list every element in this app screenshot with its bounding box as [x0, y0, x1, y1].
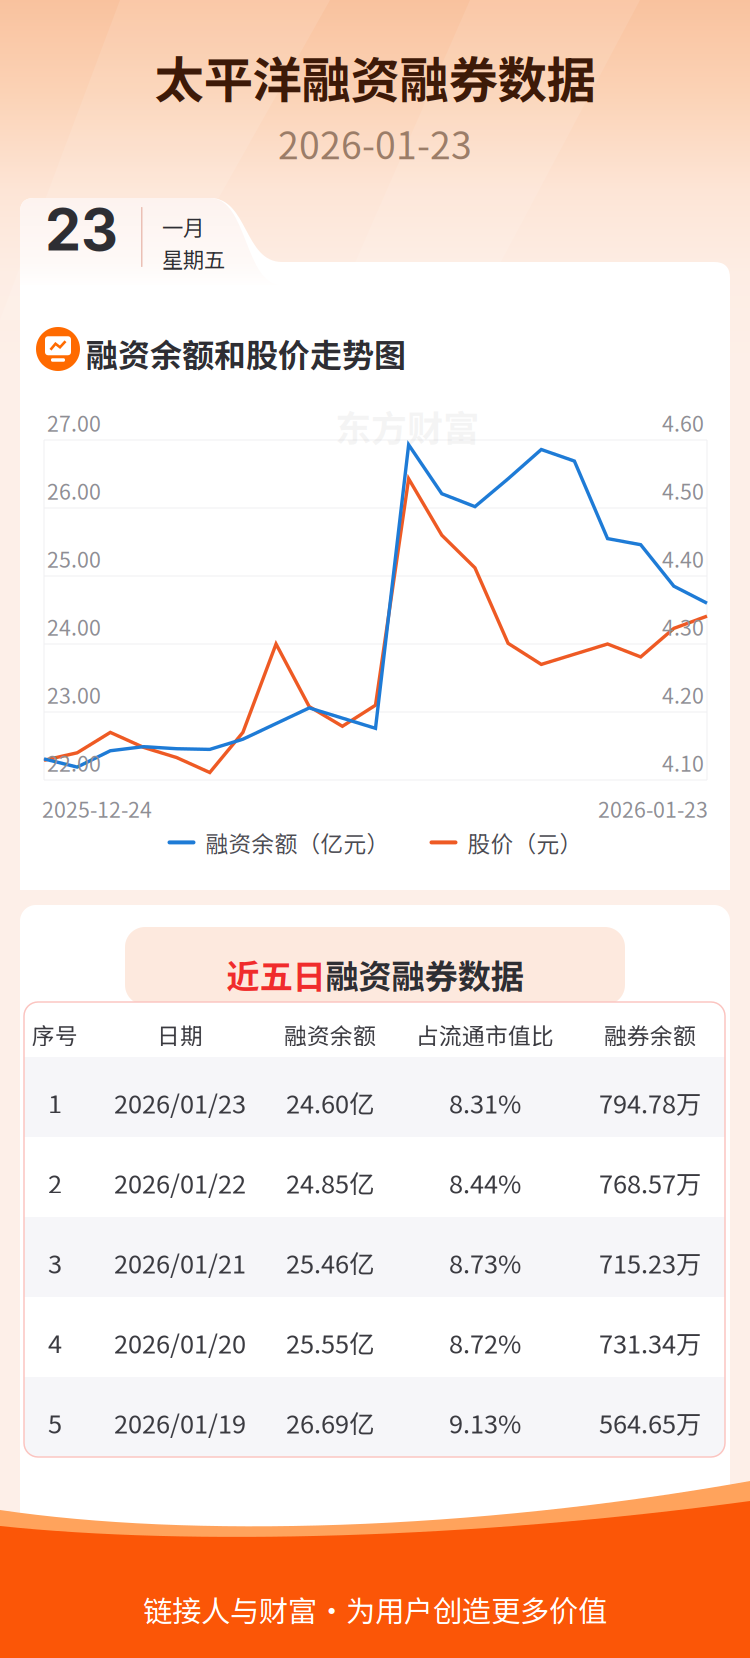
- staticText: 东方财富: [335, 400, 479, 452]
- staticText: 25.00: [47, 543, 101, 574]
- staticText: 26.69亿: [286, 1404, 374, 1441]
- staticText: 27.00: [47, 407, 101, 438]
- staticText: 一月: [162, 211, 204, 242]
- staticText: 融资余额和股价走势图: [86, 330, 406, 376]
- staticText: 768.57万: [599, 1164, 701, 1201]
- staticText: 4.40: [662, 543, 704, 574]
- staticText: 2025-12-24: [42, 793, 152, 824]
- staticText: 4: [48, 1324, 62, 1361]
- staticText: 股价（元）: [467, 826, 582, 859]
- staticText: 23.00: [47, 679, 101, 710]
- staticText: 2: [48, 1164, 62, 1201]
- staticText: 5: [48, 1404, 62, 1441]
- staticText: 25.46亿: [286, 1244, 374, 1281]
- staticText: 序号: [32, 1018, 78, 1051]
- staticText: 融资融券数据: [325, 950, 523, 998]
- staticText: 4.50: [662, 475, 704, 506]
- staticText: 2026/01/22: [114, 1164, 246, 1201]
- staticText: 26.00: [47, 475, 101, 506]
- staticText: 1: [48, 1084, 62, 1121]
- staticText: 星期五: [162, 243, 225, 274]
- staticText: 日期: [157, 1018, 203, 1051]
- staticText: 2026/01/20: [114, 1324, 246, 1361]
- staticText: 8.44%: [449, 1164, 521, 1201]
- staticText: 8.73%: [449, 1244, 521, 1281]
- staticText: 9.13%: [449, 1404, 521, 1441]
- staticText: 2026/01/19: [114, 1404, 246, 1441]
- staticText: 2026-01-23: [598, 793, 708, 824]
- staticText: 4.10: [662, 747, 704, 778]
- staticText: 占流通市值比: [416, 1018, 554, 1051]
- staticText: 731.34万: [599, 1324, 701, 1361]
- staticText: 8.31%: [449, 1084, 521, 1121]
- staticText: 715.23万: [599, 1244, 701, 1281]
- staticText: 3: [48, 1244, 62, 1281]
- staticText: 4.30: [662, 611, 704, 642]
- staticText: 融资余额: [284, 1018, 376, 1051]
- staticText: 2026-01-23: [278, 116, 472, 170]
- staticText: 794.78万: [599, 1084, 701, 1121]
- staticText: 8.72%: [449, 1324, 521, 1361]
- staticText: 2026/01/21: [114, 1244, 246, 1281]
- staticText: 2026/01/23: [114, 1084, 246, 1121]
- staticText: 22.00: [47, 747, 101, 778]
- staticText: 564.65万: [599, 1404, 701, 1441]
- staticText: 太平洋融资融券数据: [154, 41, 595, 112]
- staticText: 链接人与财富·为用户创造更多价值: [143, 1588, 607, 1630]
- staticText: 24.60亿: [286, 1084, 374, 1121]
- staticText: 4.20: [662, 679, 704, 710]
- staticText: 近五日: [226, 950, 325, 998]
- staticText: 23: [45, 195, 118, 264]
- staticText: 4.60: [662, 407, 704, 438]
- staticText: 融资余额（亿元）: [205, 826, 389, 859]
- staticText: 25.55亿: [286, 1324, 374, 1361]
- staticText: 24.85亿: [286, 1164, 374, 1201]
- staticText: 融券余额: [604, 1018, 696, 1051]
- staticText: 24.00: [47, 611, 101, 642]
